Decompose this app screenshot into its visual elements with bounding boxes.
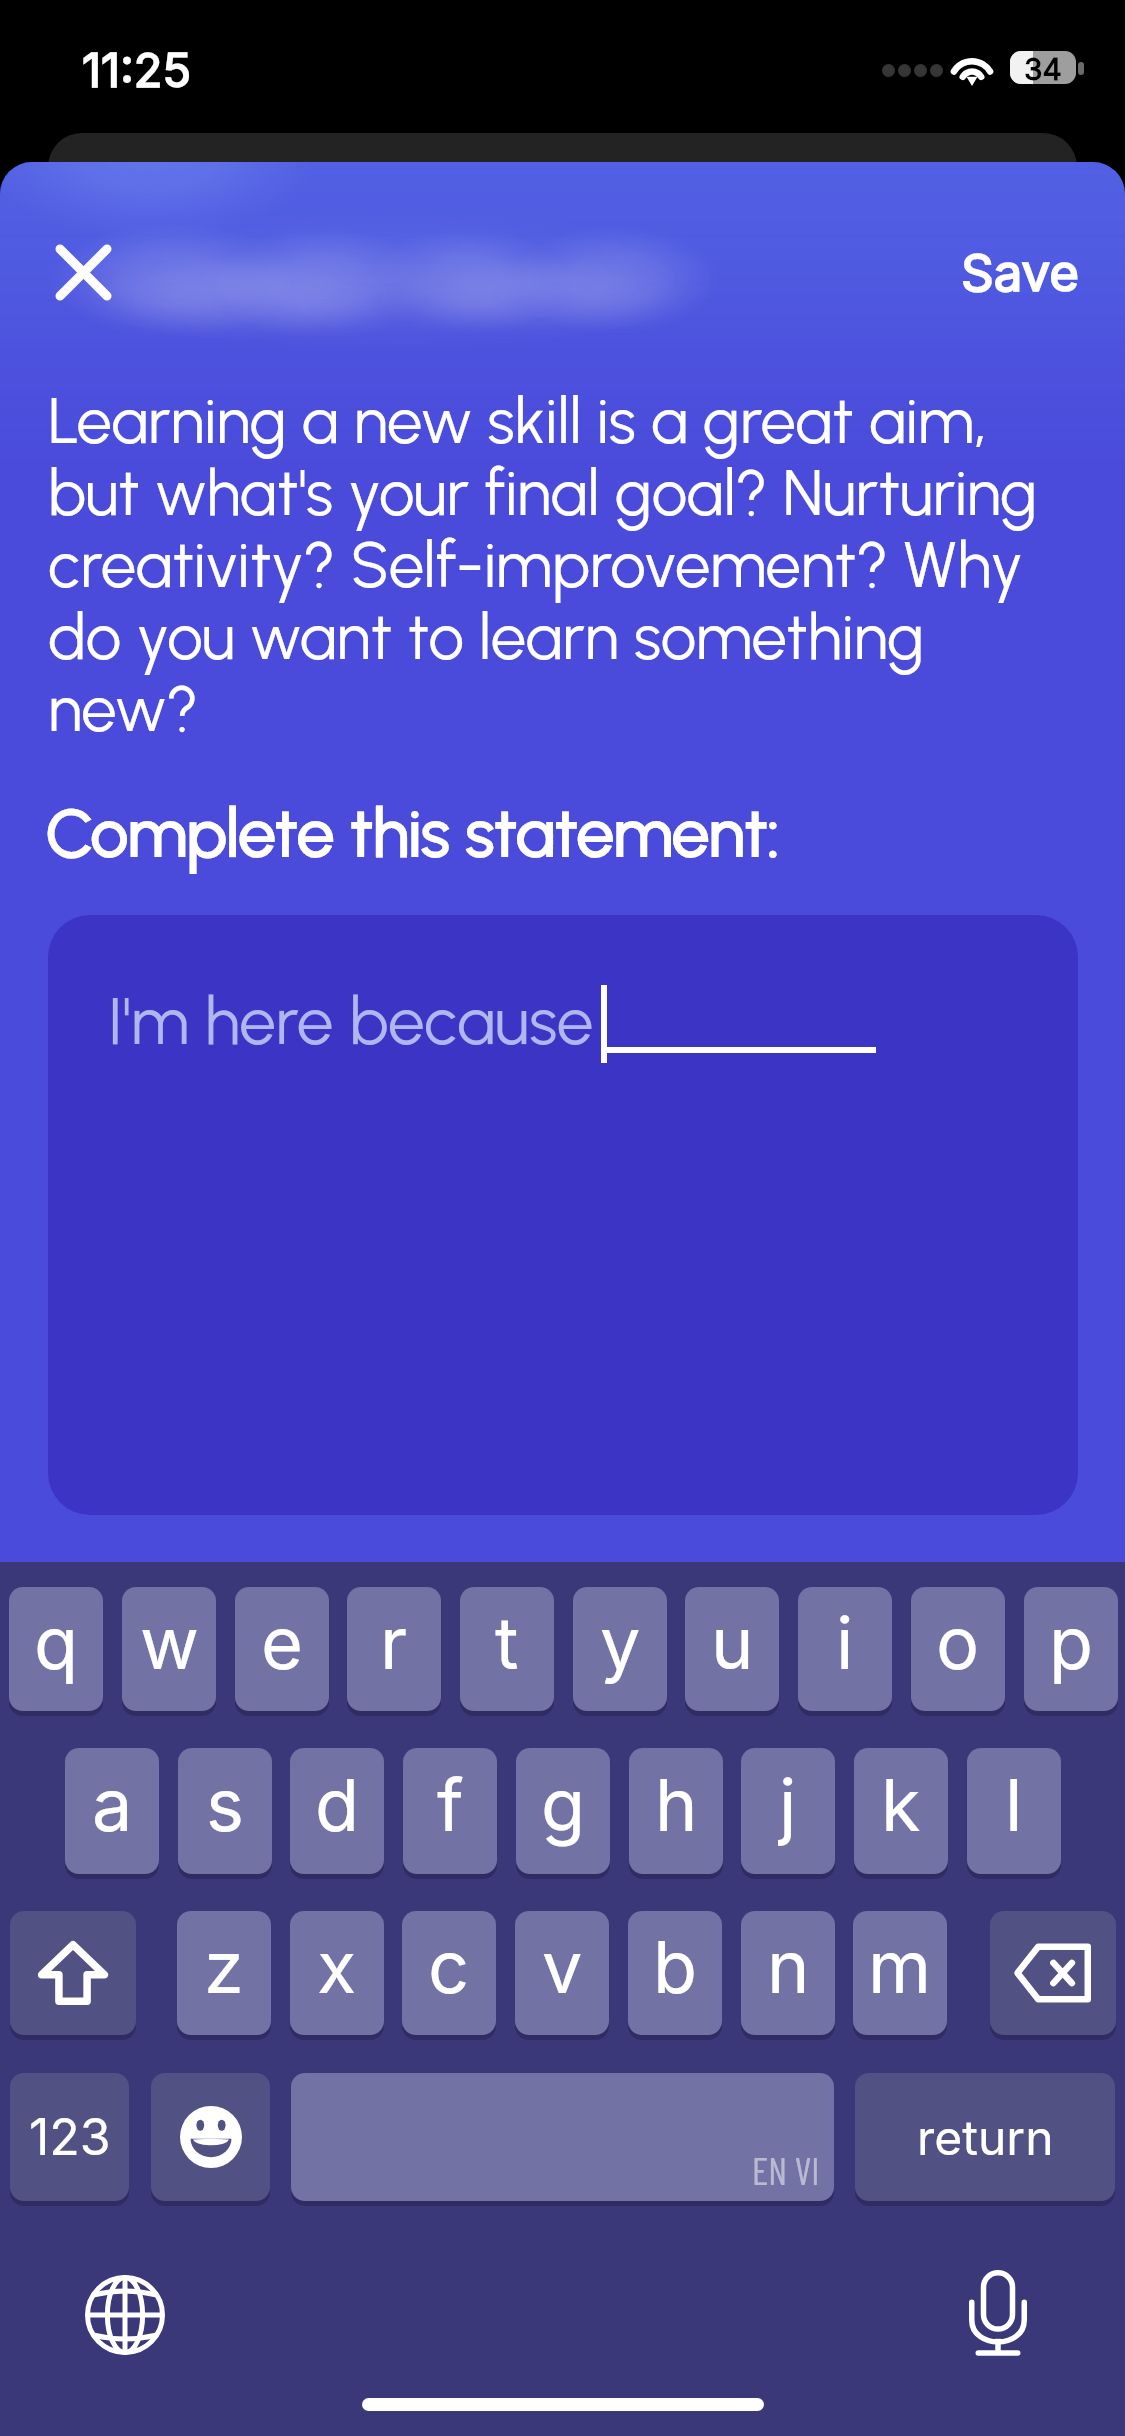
staticText: r xyxy=(380,1599,408,1686)
staticText: return xyxy=(917,2108,1054,2166)
staticText: I'm here because xyxy=(108,982,594,1061)
button[interactable]: z xyxy=(177,1911,271,2035)
staticText: 123 xyxy=(29,2107,111,2167)
button[interactable]: d xyxy=(290,1748,384,1874)
button[interactable]: u xyxy=(685,1587,779,1711)
button[interactable]: Return xyxy=(855,2073,1115,2201)
button[interactable]: Space xyxy=(291,2073,834,2201)
button[interactable]: a xyxy=(65,1748,159,1874)
button[interactable]: Numbers xyxy=(10,2073,129,2201)
staticText: t xyxy=(495,1599,519,1686)
button[interactable]: Dictation xyxy=(955,2270,1041,2356)
staticText: z xyxy=(204,1923,244,2010)
button[interactable]: g xyxy=(516,1748,610,1874)
button[interactable]: Emoji xyxy=(151,2073,270,2201)
button[interactable]: Shift xyxy=(10,1911,136,2035)
button[interactable]: q xyxy=(9,1587,103,1711)
button[interactable]: h xyxy=(629,1748,723,1874)
staticText: j xyxy=(779,1761,797,1848)
button[interactable]: I'm here because xyxy=(48,915,1078,1515)
staticText: l xyxy=(1005,1761,1023,1848)
button[interactable]: Backspace xyxy=(990,1911,1116,2035)
staticText: c xyxy=(428,1923,470,2010)
button[interactable]: c xyxy=(402,1911,496,2035)
button[interactable]: m xyxy=(853,1911,947,2035)
staticText: a xyxy=(92,1761,133,1848)
button[interactable]: j xyxy=(741,1748,835,1874)
button[interactable]: Close xyxy=(37,226,129,318)
staticText: k xyxy=(881,1761,921,1848)
staticText: i xyxy=(836,1599,854,1686)
staticText: p xyxy=(1049,1599,1094,1686)
button[interactable]: r xyxy=(347,1587,441,1711)
staticText: Save xyxy=(961,242,1080,304)
button[interactable]: Save xyxy=(961,242,1080,304)
staticText: 34 xyxy=(1024,51,1062,84)
button[interactable]: w xyxy=(122,1587,216,1711)
staticText: s xyxy=(206,1761,245,1848)
button[interactable]: s xyxy=(178,1748,272,1874)
staticText: h xyxy=(655,1761,698,1848)
button[interactable]: b xyxy=(628,1911,722,2035)
button[interactable]: Change keyboard xyxy=(84,2274,166,2356)
staticText: o xyxy=(936,1599,980,1686)
button[interactable]: y xyxy=(573,1587,667,1711)
staticText: EN VI xyxy=(752,2147,820,2193)
button[interactable]: i xyxy=(798,1587,892,1711)
button[interactable]: n xyxy=(741,1911,835,2035)
staticText: u xyxy=(711,1599,754,1686)
button[interactable]: v xyxy=(515,1911,609,2035)
button[interactable]: x xyxy=(290,1911,384,2035)
staticText: d xyxy=(315,1761,360,1848)
staticText: x xyxy=(317,1923,357,2010)
button[interactable]: l xyxy=(967,1748,1061,1874)
button[interactable]: t xyxy=(460,1587,554,1711)
staticText: y xyxy=(600,1599,641,1686)
button[interactable]: f xyxy=(403,1748,497,1874)
button[interactable]: k xyxy=(854,1748,948,1874)
staticText: m xyxy=(868,1923,932,2010)
button[interactable]: e xyxy=(235,1587,329,1711)
staticText: Learning a new skill is a great aim, but… xyxy=(48,383,1078,747)
staticText: e xyxy=(261,1599,303,1686)
staticText: q xyxy=(34,1599,79,1686)
staticText: g xyxy=(541,1761,586,1848)
staticText: v xyxy=(542,1923,583,2010)
staticText: n xyxy=(767,1923,810,2010)
staticText: Complete this statement: xyxy=(46,793,780,873)
button[interactable]: p xyxy=(1024,1587,1118,1711)
button[interactable]: o xyxy=(911,1587,1005,1711)
staticText: 11:25 xyxy=(82,41,192,98)
staticText: w xyxy=(140,1599,199,1686)
staticText: b xyxy=(653,1923,698,2010)
staticText: f xyxy=(437,1761,464,1848)
